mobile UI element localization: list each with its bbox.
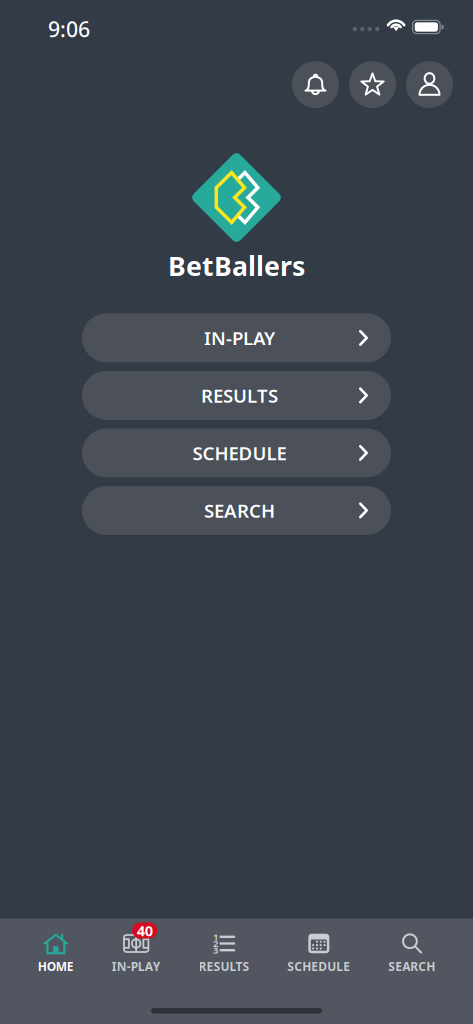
- button[interactable]: Notifications: [292, 61, 339, 108]
- button[interactable]: HOME: [38, 932, 74, 974]
- button[interactable]: SCHEDULE: [82, 428, 391, 477]
- staticText: IN-PLAY: [112, 958, 161, 974]
- button[interactable]: SCHEDULE: [287, 932, 350, 974]
- button[interactable]: Account: [406, 61, 453, 108]
- button[interactable]: Favourites: [349, 61, 396, 108]
- staticText: 2: [213, 937, 218, 950]
- staticText: SCHEDULE: [287, 958, 350, 974]
- staticText: SEARCH: [204, 498, 275, 523]
- staticText: SEARCH: [388, 958, 435, 974]
- button[interactable]: IN-PLAY: [82, 313, 391, 362]
- staticText: IN-PLAY: [204, 325, 275, 350]
- staticText: 40: [137, 921, 153, 940]
- button[interactable]: 1: [198, 932, 249, 974]
- button[interactable]: RESULTS: [82, 371, 391, 420]
- button[interactable]: SEARCH: [82, 486, 391, 535]
- staticText: RESULTS: [201, 383, 278, 408]
- button[interactable]: SEARCH: [388, 932, 435, 974]
- button[interactable]: 40: [112, 932, 161, 974]
- staticText: SCHEDULE: [192, 440, 286, 465]
- staticText: 1: [213, 931, 218, 943]
- staticText: RESULTS: [198, 958, 249, 974]
- staticText: 3: [213, 944, 218, 956]
- staticText: HOME: [38, 958, 74, 974]
- staticText: BetBallers: [168, 248, 305, 283]
- staticText: 9:06: [48, 15, 90, 43]
